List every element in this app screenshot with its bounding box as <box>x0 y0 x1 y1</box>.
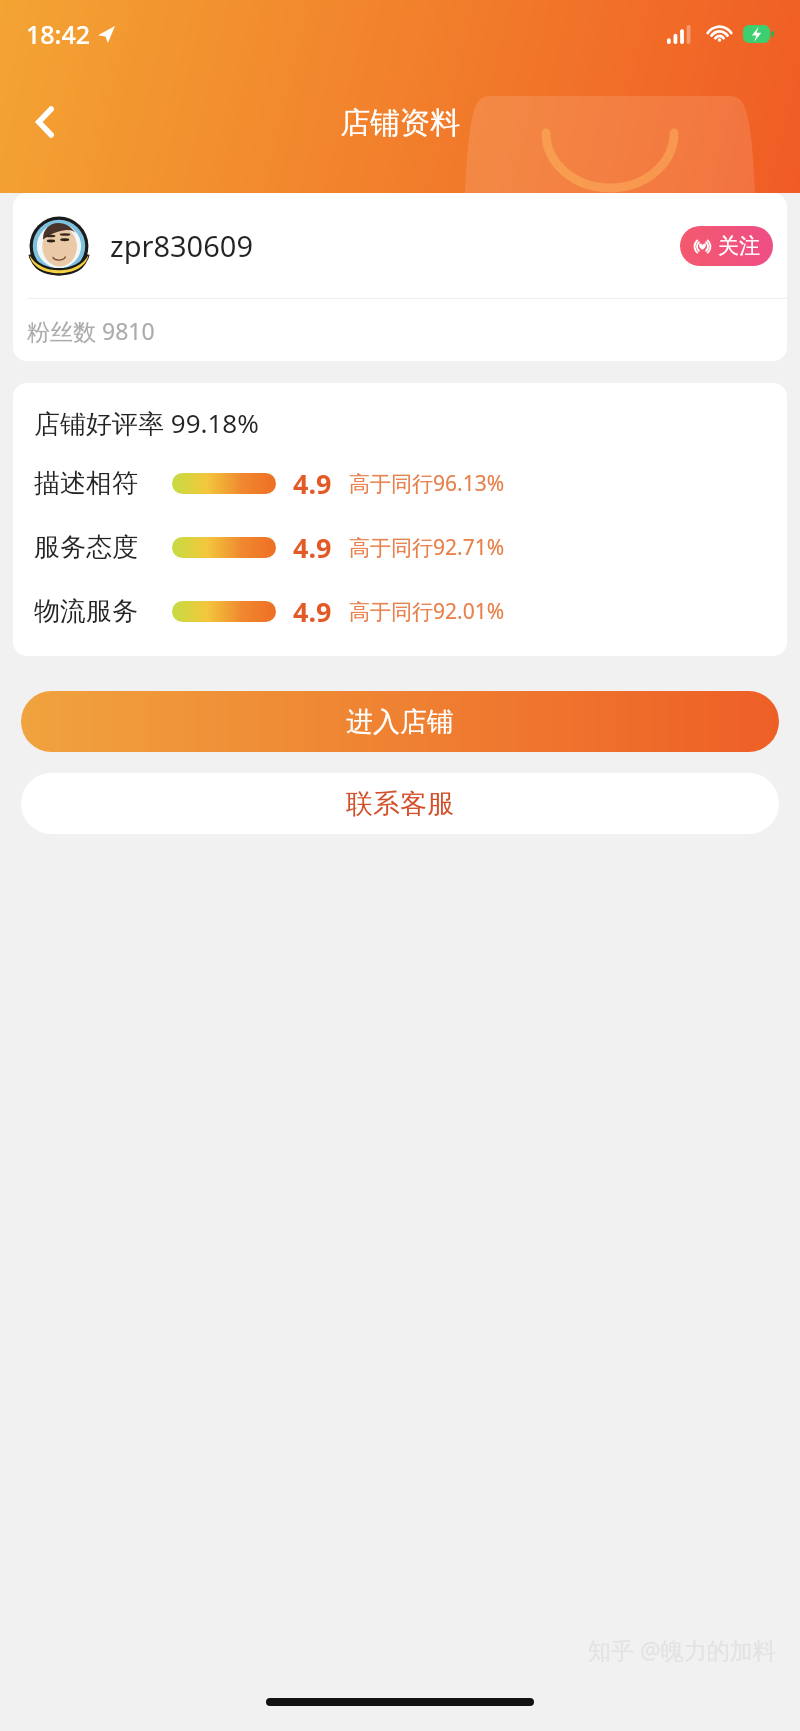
staticText: 4.9 <box>293 465 332 502</box>
staticText: 粉丝数 9810 <box>27 315 155 346</box>
staticText: 物流服务 <box>34 595 158 628</box>
staticText: zpr830609 <box>110 226 253 265</box>
button[interactable]: 关注 <box>680 226 773 266</box>
staticText: 服务态度 <box>34 531 158 564</box>
button[interactable]: 联系客服 <box>21 773 779 834</box>
staticText: 店铺资料 <box>340 104 460 142</box>
staticText: 描述相符 <box>34 467 158 500</box>
staticText: 高于同行92.01% <box>349 597 505 626</box>
staticText: 4.9 <box>293 593 332 630</box>
staticText: 高于同行96.13% <box>349 469 505 498</box>
button[interactable]: 进入店铺 <box>21 691 779 752</box>
staticText: 知乎 @魄力的加料 <box>588 1634 776 1665</box>
staticText: 18:42 <box>26 17 91 51</box>
staticText: 进入店铺 <box>346 705 454 739</box>
staticText: 4.9 <box>293 529 332 566</box>
staticText: 联系客服 <box>346 787 454 821</box>
staticText: 高于同行92.71% <box>349 533 505 562</box>
button[interactable]: Back <box>14 90 78 154</box>
staticText: 关注 <box>718 233 760 259</box>
staticText: 店铺好评率 99.18% <box>34 405 259 441</box>
